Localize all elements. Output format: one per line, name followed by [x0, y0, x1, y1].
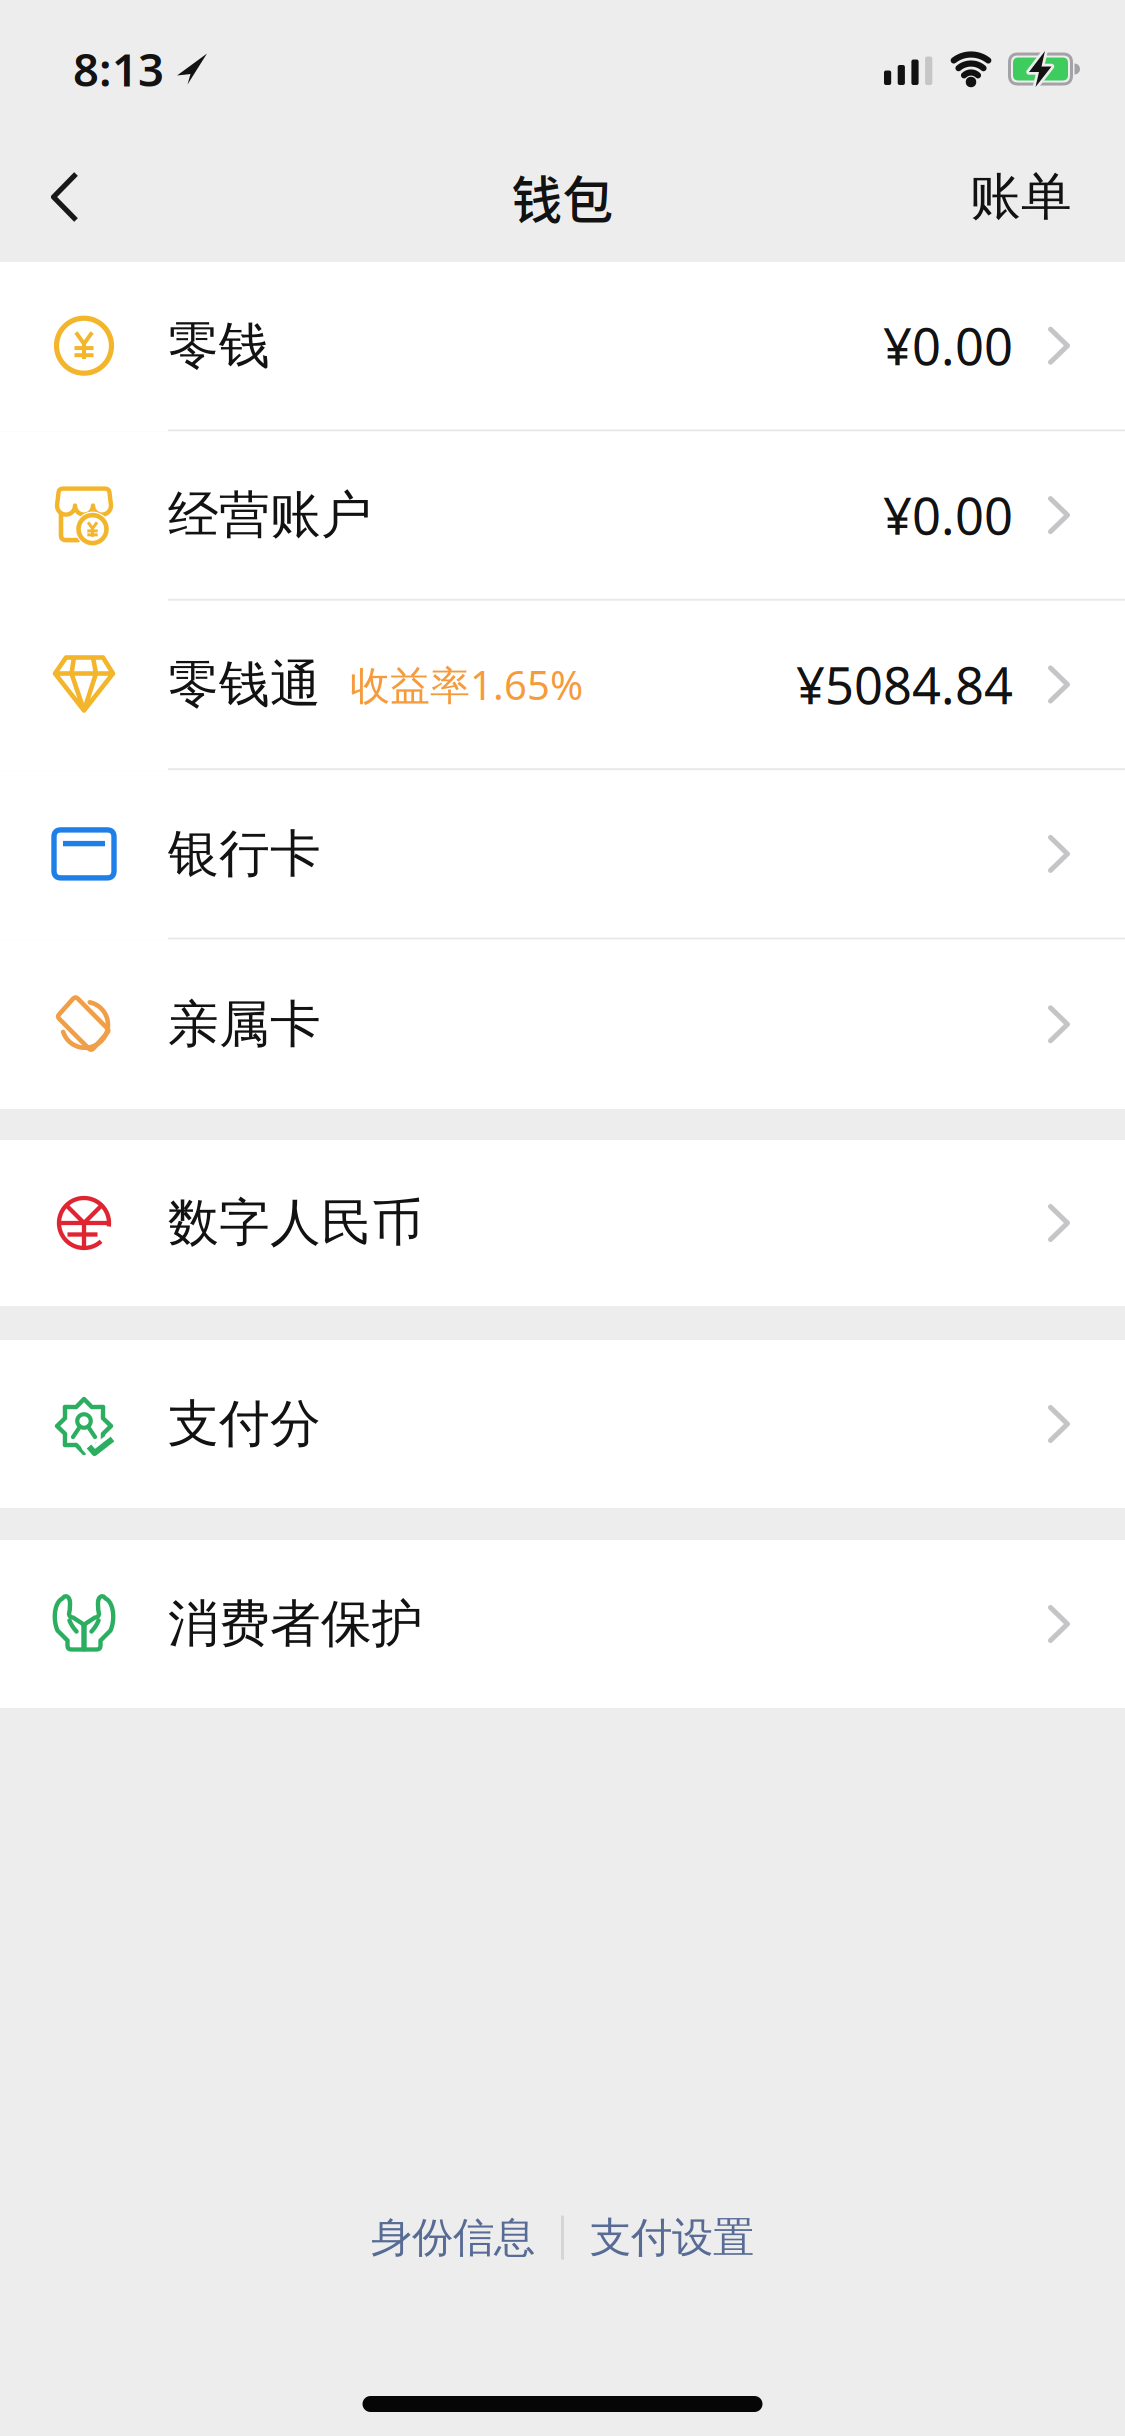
button[interactable]: 账单	[970, 166, 1125, 228]
button[interactable]: 身份信息	[371, 2212, 535, 2263]
staticText: 钱包	[511, 160, 613, 234]
staticText: ¥0.00	[883, 481, 1013, 549]
staticText: 零钱通	[168, 653, 321, 716]
staticText: 身份信息	[371, 2212, 535, 2263]
staticText: 亲属卡	[168, 993, 321, 1055]
staticText: 经营账户	[168, 484, 372, 546]
button[interactable]: 银行卡	[0, 770, 1125, 940]
staticText: 支付分	[168, 1393, 321, 1455]
button[interactable]: 经营账户	[0, 431, 1125, 601]
button[interactable]: 支付设置	[590, 2212, 754, 2263]
staticText: ¥5084.84	[796, 651, 1013, 718]
staticText: 账单	[970, 166, 1072, 228]
staticText: 数字人民币	[168, 1192, 423, 1254]
staticText: 消费者保护	[168, 1593, 423, 1655]
staticText: 8:13	[73, 39, 164, 99]
staticText: 零钱	[168, 315, 270, 377]
staticText: 收益率1.65%	[350, 658, 583, 711]
button[interactable]: 零钱	[0, 262, 1125, 431]
staticText: 支付设置	[590, 2212, 754, 2263]
staticText: ¥0.00	[883, 312, 1013, 379]
button[interactable]: 亲属卡	[0, 940, 1125, 1109]
button[interactable]: 消费者保护	[0, 1540, 1125, 1708]
staticText: 银行卡	[168, 823, 321, 885]
button[interactable]: 零钱通	[0, 601, 1125, 770]
button[interactable]: Back	[0, 172, 108, 222]
button[interactable]: 支付分	[0, 1340, 1125, 1508]
button[interactable]: 数字人民币	[0, 1140, 1125, 1306]
